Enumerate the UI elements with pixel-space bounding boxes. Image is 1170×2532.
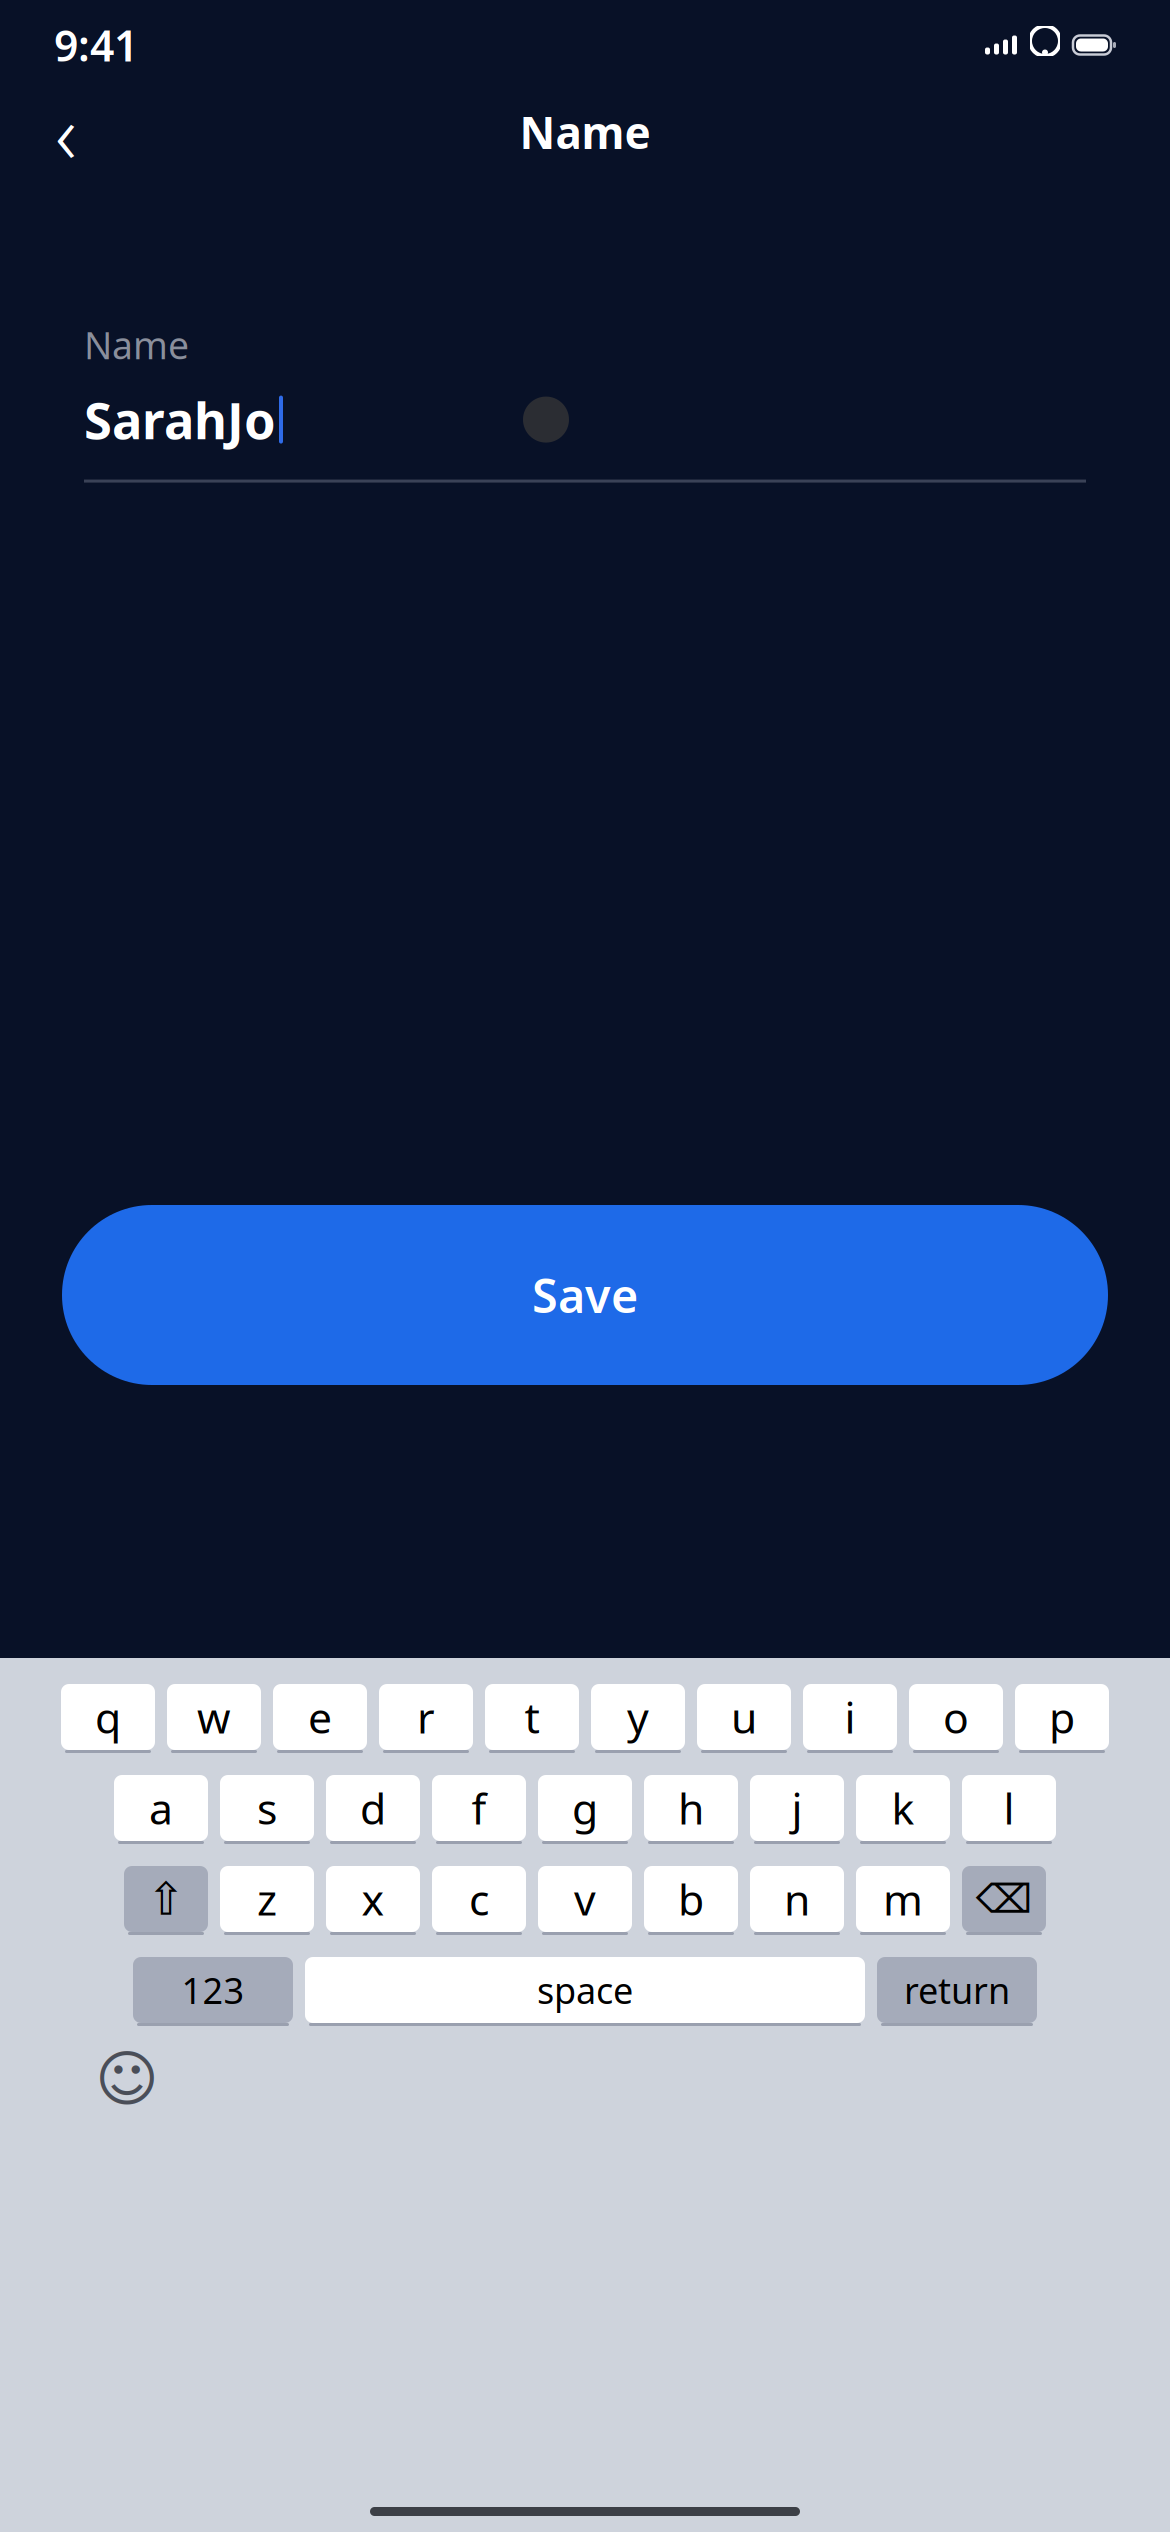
button[interactable]: k xyxy=(856,1775,950,1844)
staticText: SarahJo xyxy=(84,386,276,453)
button[interactable]: b xyxy=(644,1866,738,1935)
button[interactable]: d xyxy=(326,1775,420,1844)
staticText: g xyxy=(572,1780,598,1836)
button[interactable]: t xyxy=(485,1684,579,1753)
button[interactable]: g xyxy=(538,1775,632,1844)
button[interactable]: u xyxy=(697,1684,791,1753)
staticText: a xyxy=(149,1780,173,1836)
button[interactable]: ⇧ xyxy=(124,1866,208,1935)
button[interactable]: space xyxy=(305,1957,865,2026)
button[interactable]: m xyxy=(856,1866,950,1935)
button[interactable]: return xyxy=(877,1957,1037,2026)
button[interactable]: e xyxy=(273,1684,367,1753)
staticText: d xyxy=(360,1780,386,1836)
staticText: ‹ xyxy=(55,77,77,187)
button[interactable]: z xyxy=(220,1866,314,1935)
staticText: t xyxy=(524,1689,539,1745)
button[interactable]: w xyxy=(167,1684,261,1753)
button[interactable]: p xyxy=(1015,1684,1109,1753)
staticText: h xyxy=(678,1780,704,1836)
staticText: n xyxy=(784,1871,810,1927)
staticText: y xyxy=(627,1689,649,1745)
button[interactable]: j xyxy=(750,1775,844,1844)
button[interactable]: o xyxy=(909,1684,1003,1753)
staticText: w xyxy=(197,1689,231,1745)
staticText: v xyxy=(574,1871,596,1927)
button[interactable]: h xyxy=(644,1775,738,1844)
button[interactable]: y xyxy=(591,1684,685,1753)
staticText: Name xyxy=(519,103,650,161)
button[interactable]: Emoji keyboard xyxy=(92,2044,162,2114)
staticText: ⌫ xyxy=(975,1876,1032,1922)
staticText: 123 xyxy=(181,1966,244,2014)
button[interactable]: s xyxy=(220,1775,314,1844)
staticText: return xyxy=(904,1966,1010,2014)
button[interactable]: Clear text xyxy=(523,397,569,443)
staticText: r xyxy=(417,1689,435,1745)
button[interactable]: Back xyxy=(36,99,96,165)
staticText: Save xyxy=(532,1264,638,1326)
button[interactable]: v xyxy=(538,1866,632,1935)
button[interactable]: Save xyxy=(62,1205,1108,1385)
staticText: b xyxy=(678,1871,704,1927)
button[interactable]: x xyxy=(326,1866,420,1935)
staticText: o xyxy=(943,1689,969,1745)
staticText: z xyxy=(257,1871,277,1927)
staticText: i xyxy=(844,1689,855,1745)
staticText: x xyxy=(361,1871,384,1927)
staticText: Name xyxy=(84,320,189,370)
staticText: 9:41 xyxy=(54,17,138,73)
staticText: ☺ xyxy=(95,2044,159,2114)
button[interactable]: c xyxy=(432,1866,526,1935)
button[interactable]: a xyxy=(114,1775,208,1844)
button[interactable]: 123 xyxy=(133,1957,293,2026)
button[interactable]: l xyxy=(962,1775,1056,1844)
staticText: f xyxy=(471,1780,486,1836)
staticText: c xyxy=(469,1871,489,1927)
staticText: space xyxy=(537,1966,633,2014)
staticText: m xyxy=(883,1871,923,1927)
staticText: ⇧ xyxy=(147,1873,185,1925)
button[interactable]: n xyxy=(750,1866,844,1935)
staticText: k xyxy=(891,1780,914,1836)
button[interactable]: i xyxy=(803,1684,897,1753)
button[interactable]: ⌫ xyxy=(962,1866,1046,1935)
staticText: e xyxy=(308,1689,332,1745)
staticText: q xyxy=(95,1689,121,1745)
button[interactable]: r xyxy=(379,1684,473,1753)
staticText: u xyxy=(731,1689,757,1745)
staticText: p xyxy=(1049,1689,1075,1745)
staticText: j xyxy=(791,1780,802,1836)
staticText: s xyxy=(257,1780,277,1836)
staticText: l xyxy=(1003,1780,1014,1836)
button[interactable]: f xyxy=(432,1775,526,1844)
button[interactable]: q xyxy=(61,1684,155,1753)
